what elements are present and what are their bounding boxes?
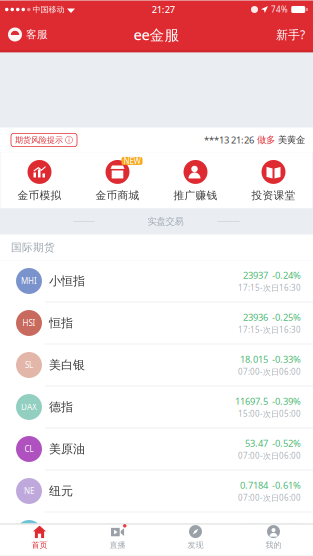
staticText: DAX bbox=[21, 402, 37, 412]
staticText: 客服 bbox=[26, 28, 48, 41]
button[interactable]: HSI bbox=[0, 302, 313, 344]
staticText: 23937 -0.24% bbox=[243, 269, 301, 281]
button[interactable]: 首页 bbox=[0, 524, 78, 555]
button[interactable]: 我的 bbox=[234, 524, 312, 555]
staticText: 德指 bbox=[49, 400, 73, 414]
staticText: 我的 bbox=[265, 540, 281, 550]
staticText: 17:15-次日16:30 bbox=[238, 324, 301, 335]
staticText: ***13 21:26 bbox=[204, 134, 254, 146]
staticText: 07:00-次日06:00 bbox=[238, 366, 301, 377]
button[interactable]: DAX bbox=[0, 386, 313, 428]
staticText: 美白银 bbox=[49, 358, 85, 372]
button[interactable]: 投资课堂 bbox=[234, 152, 312, 208]
staticText: MHI bbox=[21, 276, 37, 286]
staticText: 实盘交易 bbox=[147, 216, 183, 227]
staticText: 恒指 bbox=[49, 316, 73, 330]
staticText: AU bbox=[23, 528, 34, 538]
staticText: 新手? bbox=[276, 26, 305, 42]
button[interactable]: 客服 bbox=[0, 19, 56, 49]
button[interactable]: 金币模拟 bbox=[0, 152, 78, 208]
staticText: 0.7184 -0.61% bbox=[240, 479, 301, 491]
staticText: SL bbox=[25, 360, 33, 370]
staticText: HSI bbox=[22, 318, 35, 328]
staticText: 期货风险提示 bbox=[15, 135, 63, 145]
staticText: 国际期货 bbox=[11, 241, 55, 254]
button[interactable]: CL bbox=[0, 428, 313, 470]
staticText: 中国移动 bbox=[32, 5, 64, 14]
staticText: 金币模拟 bbox=[17, 189, 61, 202]
staticText: 小恒指 bbox=[49, 274, 85, 288]
button[interactable]: 新手? bbox=[268, 19, 313, 49]
button[interactable]: 直播 bbox=[78, 524, 156, 555]
staticText: 美黄金 bbox=[278, 134, 305, 146]
button[interactable]: AU bbox=[0, 512, 313, 554]
button[interactable]: 推广赚钱 bbox=[156, 152, 234, 208]
staticText: 做多 bbox=[257, 134, 275, 146]
staticText: 首页 bbox=[31, 540, 47, 550]
staticText: 0.7514 -0.46% bbox=[240, 521, 301, 533]
button[interactable]: SL bbox=[0, 344, 313, 386]
button[interactable]: NEW bbox=[78, 152, 156, 208]
staticText: 15:00-次日05:00 bbox=[238, 408, 301, 419]
staticText: NE bbox=[24, 486, 34, 496]
staticText: 美原油 bbox=[49, 442, 85, 456]
staticText: ⓘ bbox=[65, 135, 73, 145]
staticText: 11697.5 -0.39% bbox=[235, 395, 301, 407]
staticText: CL bbox=[24, 444, 33, 454]
staticText: 17:15-次日16:30 bbox=[238, 282, 301, 293]
staticText: 纽元 bbox=[49, 484, 73, 498]
staticText: 金币商城 bbox=[95, 189, 139, 202]
staticText: ee金服 bbox=[133, 25, 179, 44]
staticText: 18.015 -0.33% bbox=[240, 353, 301, 365]
staticText: NEW bbox=[123, 156, 140, 166]
staticText: 23936 -0.25% bbox=[243, 311, 301, 323]
staticText: 推广赚钱 bbox=[173, 189, 217, 202]
staticText: 07:00-次日06:00 bbox=[238, 492, 301, 503]
button[interactable]: 发现 bbox=[156, 524, 234, 555]
button[interactable]: MHI bbox=[0, 260, 313, 302]
staticText: 74% bbox=[271, 4, 288, 15]
staticText: 07:00-次日06:00 bbox=[238, 450, 301, 461]
staticText: 21:27 bbox=[152, 3, 175, 16]
staticText: 投资课堂 bbox=[251, 189, 295, 202]
staticText: 53.47 -0.52% bbox=[245, 437, 301, 449]
staticText: 直播 bbox=[109, 540, 125, 550]
button[interactable]: 期货风险提示 bbox=[11, 133, 77, 146]
staticText: 发现 bbox=[187, 540, 203, 550]
button[interactable]: NE bbox=[0, 470, 313, 512]
staticText: 07:00-次日06:00 bbox=[238, 534, 301, 545]
